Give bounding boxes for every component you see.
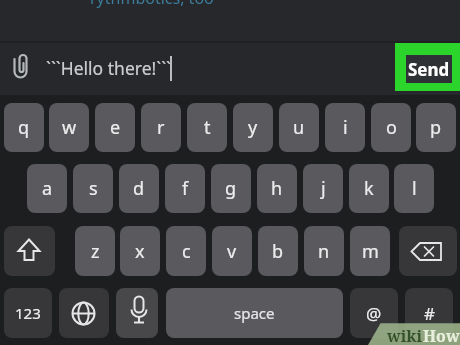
staticText: m	[362, 239, 379, 264]
button[interactable]	[59, 288, 109, 338]
staticText: h	[271, 176, 283, 201]
button[interactable]: z	[75, 226, 115, 276]
button[interactable]: c	[166, 226, 206, 276]
button[interactable]: e	[95, 103, 135, 152]
button[interactable]: m	[350, 226, 390, 276]
staticText: o	[386, 115, 397, 140]
button[interactable]: #	[405, 288, 453, 338]
button[interactable]: i	[325, 103, 365, 152]
staticText: p	[430, 115, 442, 140]
button[interactable]: y	[233, 103, 273, 152]
button[interactable]	[4, 226, 55, 276]
staticText: t	[204, 115, 211, 140]
staticText: space	[234, 303, 275, 323]
staticText: u	[293, 115, 305, 140]
staticText: j	[321, 176, 326, 201]
button[interactable]: f	[165, 164, 205, 213]
button[interactable]: Send	[406, 55, 452, 83]
button[interactable]: b	[258, 226, 298, 276]
staticText: q	[18, 115, 30, 140]
staticText: i	[343, 115, 348, 140]
button[interactable]: 123	[4, 288, 52, 338]
button[interactable]: v	[212, 226, 252, 276]
staticText: y	[248, 115, 258, 140]
button[interactable]: u	[279, 103, 319, 152]
button[interactable]	[12, 52, 30, 80]
staticText: e	[110, 115, 121, 140]
staticText: g	[225, 176, 237, 201]
button[interactable]: a	[27, 164, 67, 213]
staticText: rythmbotics, too	[90, 0, 214, 9]
staticText: Send	[408, 58, 450, 81]
button[interactable]: x	[120, 226, 160, 276]
button[interactable]: p	[416, 103, 456, 152]
button[interactable]: n	[304, 226, 344, 276]
staticText: @	[366, 302, 382, 325]
staticText: #	[424, 302, 435, 325]
staticText: 123	[15, 303, 41, 323]
staticText: r	[157, 115, 165, 140]
button[interactable]	[40, 44, 390, 94]
staticText: c	[182, 239, 191, 264]
staticText: k	[364, 176, 374, 201]
button[interactable]: @	[350, 288, 398, 338]
button[interactable]: l	[394, 164, 434, 213]
button[interactable]: t	[187, 103, 227, 152]
staticText: a	[42, 176, 53, 201]
staticText: d	[133, 176, 145, 201]
staticText: b	[272, 239, 284, 264]
button[interactable]: g	[211, 164, 251, 213]
button[interactable]: k	[349, 164, 389, 213]
staticText: l	[412, 176, 417, 201]
button[interactable]: h	[257, 164, 297, 213]
button[interactable]	[116, 288, 158, 338]
staticText: s	[89, 176, 98, 201]
staticText: ```Hello there!```	[46, 56, 171, 80]
button[interactable]	[399, 226, 457, 276]
button[interactable]: s	[73, 164, 113, 213]
staticText: wiki	[387, 325, 423, 345]
staticText: w	[62, 115, 77, 140]
button[interactable]: q	[4, 103, 44, 152]
button[interactable]: j	[303, 164, 343, 213]
button[interactable]: w	[49, 103, 89, 152]
staticText: z	[91, 239, 100, 264]
staticText: How	[423, 325, 460, 345]
button[interactable]: r	[141, 103, 181, 152]
button[interactable]: o	[371, 103, 411, 152]
staticText: f	[182, 176, 189, 201]
staticText: x	[135, 239, 145, 264]
button[interactable]: space	[166, 288, 343, 338]
staticText: n	[318, 239, 330, 264]
button[interactable]: d	[119, 164, 159, 213]
staticText: v	[227, 239, 237, 264]
